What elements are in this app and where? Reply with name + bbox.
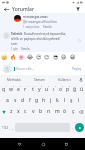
staticText: 4 xyxy=(27,85,29,88)
button[interactable]: Gönder xyxy=(75,123,84,132)
button[interactable]: f xyxy=(26,95,33,106)
button[interactable]: Emoji 2 xyxy=(10,54,16,60)
button[interactable]: Sesli giriş xyxy=(77,75,84,84)
button[interactable]: Beğen xyxy=(76,37,83,44)
staticText: 😊 xyxy=(44,54,50,60)
button[interactable]: d xyxy=(19,95,26,106)
staticText: n xyxy=(47,108,51,115)
button[interactable]: Emoji 7 xyxy=(53,54,59,60)
button[interactable]: Emoji 4 xyxy=(27,54,33,60)
button[interactable]: Yanıtla xyxy=(43,25,52,29)
button[interactable]: Emoji 9 xyxy=(70,54,76,60)
staticText: 3 xyxy=(20,85,22,88)
staticText: j xyxy=(50,97,52,104)
staticText: 1 xyxy=(5,85,7,88)
staticText: h xyxy=(42,97,46,104)
staticText: x xyxy=(17,108,20,115)
button[interactable]: c xyxy=(22,106,29,117)
staticText: Tefertik xyxy=(11,32,23,36)
button[interactable]: Sil xyxy=(77,106,85,117)
button[interactable]: Geri xyxy=(14,139,24,149)
button[interactable]: q xyxy=(0,84,8,95)
staticText: Tamam xyxy=(34,78,46,82)
button[interactable]: Emoji 5 xyxy=(36,54,42,60)
staticText: b xyxy=(39,108,43,115)
button[interactable]: ğ xyxy=(71,84,78,95)
button[interactable]: ı xyxy=(50,84,57,95)
staticText: a xyxy=(6,97,9,104)
staticText: f xyxy=(29,97,31,104)
button[interactable]: l xyxy=(61,95,68,106)
button[interactable]: Ana ekran xyxy=(38,139,48,149)
button[interactable]: z xyxy=(8,106,15,117)
staticText: Yorumlar xyxy=(12,6,35,13)
button[interactable]: k xyxy=(54,95,61,106)
staticText: ?123 xyxy=(2,126,9,130)
button[interactable]: Shift xyxy=(0,106,8,117)
button[interactable]: Merhaba xyxy=(1,75,27,84)
button[interactable]: h xyxy=(40,95,47,106)
button[interactable]: v xyxy=(29,106,37,117)
staticText: sifirlik ve paylaşım alsın!dünyafreed! xyxy=(11,37,60,41)
staticText: . xyxy=(72,125,74,130)
button[interactable]: Sırala xyxy=(74,5,82,13)
staticText: w xyxy=(9,86,14,93)
button[interactable]: ?123 xyxy=(1,123,10,132)
staticText: Merhaba xyxy=(7,78,21,82)
button[interactable]: y xyxy=(36,84,43,95)
button[interactable]: e xyxy=(15,84,22,95)
button[interactable]: Tamam xyxy=(27,75,52,84)
button[interactable]: Nokta xyxy=(70,123,75,132)
button[interactable]: Emoji 6 xyxy=(44,54,50,60)
staticText: q xyxy=(2,86,6,93)
staticText: ş xyxy=(70,97,73,104)
button[interactable]: j xyxy=(47,95,54,106)
button[interactable]: n xyxy=(45,106,53,117)
staticText: 9 xyxy=(62,85,64,88)
button[interactable]: Yanıtla xyxy=(21,47,30,51)
button[interactable]: t xyxy=(29,84,36,95)
button[interactable]: u xyxy=(43,84,50,95)
button[interactable]: Emoji 8 xyxy=(61,54,67,60)
button[interactable]: m xyxy=(53,106,61,117)
button[interactable]: r xyxy=(22,84,29,95)
staticText: Kullanıcı xyxy=(58,78,71,82)
staticText: v xyxy=(32,108,35,115)
staticText: Yorum ekle... xyxy=(16,67,35,71)
button[interactable]: Kullanıcı xyxy=(52,75,77,84)
staticText: t xyxy=(32,86,34,93)
button[interactable]: i xyxy=(75,95,82,106)
button[interactable]: p xyxy=(64,84,71,95)
button[interactable]: w xyxy=(8,84,15,95)
button[interactable]: o xyxy=(57,84,64,95)
staticText: ı xyxy=(53,86,55,93)
button[interactable]: b xyxy=(37,106,45,117)
staticText: cevir xyxy=(11,42,18,46)
button[interactable]: ş xyxy=(68,95,75,106)
staticText: k xyxy=(56,97,59,104)
button[interactable]: ç xyxy=(69,106,77,117)
staticText: @it.maangas.official.fans xyxy=(23,20,57,24)
button[interactable]: ü xyxy=(78,84,85,95)
button[interactable]: x xyxy=(15,106,22,117)
staticText: 6 xyxy=(41,85,43,88)
staticText: 0 xyxy=(69,85,71,88)
staticText: 8 xyxy=(55,85,57,88)
staticText: c xyxy=(24,108,27,115)
button[interactable]: Emoji 3 xyxy=(18,54,24,60)
button[interactable]: Geri xyxy=(2,5,10,13)
button[interactable]: Virgül xyxy=(10,123,15,132)
button[interactable]: a xyxy=(3,95,11,106)
button[interactable]: Son uygulamalar xyxy=(61,139,71,149)
staticText: 7 xyxy=(48,85,50,88)
staticText: 😍 xyxy=(36,54,42,60)
button[interactable]: ö xyxy=(61,106,69,117)
button[interactable]: s xyxy=(11,95,19,106)
button[interactable]: Emoji 1 xyxy=(1,54,7,60)
button[interactable]: g xyxy=(33,95,40,106)
staticText: m.maangas.umas xyxy=(23,15,48,19)
staticText: 😄 xyxy=(61,54,67,60)
staticText: d xyxy=(21,97,25,104)
button[interactable]: Paylaş xyxy=(72,67,82,71)
